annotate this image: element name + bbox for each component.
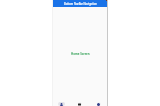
button[interactable]: Settings	[89, 97, 108, 106]
staticText: Home Screen	[71, 52, 90, 56]
button[interactable]: Profile	[52, 97, 70, 106]
staticText: Bottom NavBar Navigation	[64, 2, 97, 5]
button[interactable]: Mail	[70, 97, 89, 106]
